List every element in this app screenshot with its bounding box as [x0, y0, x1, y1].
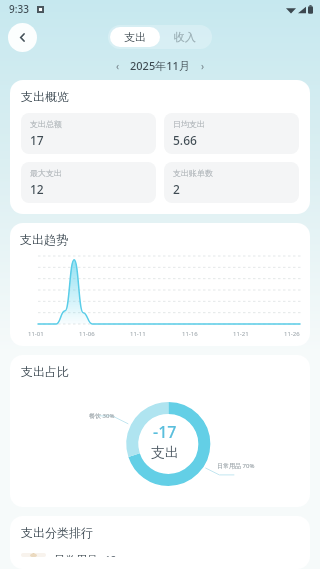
- button[interactable]: 支出总额: [21, 113, 156, 154]
- staticText: 17: [30, 132, 44, 148]
- staticText: 收入: [174, 30, 196, 44]
- button[interactable]: 日均支出: [164, 113, 299, 154]
- staticText: 9:33: [9, 2, 29, 16]
- button[interactable]: Next month: [195, 58, 210, 73]
- button[interactable]: 支出账单数: [164, 162, 299, 203]
- button[interactable]: Back: [8, 23, 37, 52]
- staticText: -17: [153, 421, 177, 443]
- staticText: 支出分类排行: [21, 525, 93, 540]
- staticText: 支出账单数: [173, 168, 213, 178]
- staticText: 最大支出: [30, 168, 62, 178]
- staticText: ›: [201, 59, 205, 73]
- button[interactable]: Previous month: [110, 58, 125, 73]
- staticText: 支出概览: [21, 89, 69, 104]
- staticText: 2025年11月: [130, 58, 190, 73]
- button[interactable]: 最大支出: [21, 162, 156, 203]
- staticText: 支出占比: [21, 364, 69, 379]
- staticText: 餐饮 30%: [89, 412, 115, 420]
- staticText: 11-16: [182, 330, 198, 338]
- staticText: 11-26: [284, 330, 300, 338]
- staticText: 5.66: [173, 132, 197, 148]
- staticText: 12: [105, 553, 117, 557]
- button[interactable]: 支出: [110, 27, 160, 47]
- staticText: 日均支出: [173, 119, 205, 129]
- staticText: ‹: [116, 59, 120, 73]
- staticText: 12: [30, 181, 44, 197]
- staticText: 11-01: [28, 330, 44, 338]
- staticText: 11-21: [233, 330, 249, 338]
- staticText: 日常用品: [54, 553, 98, 557]
- staticText: 11-06: [79, 330, 95, 338]
- staticText: 11-11: [130, 330, 146, 338]
- staticText: 支出趋势: [20, 232, 68, 247]
- staticText: 支出总额: [30, 119, 62, 129]
- button[interactable]: 日常用品: [21, 553, 299, 557]
- button[interactable]: 收入: [160, 27, 210, 47]
- staticText: 支出: [151, 444, 179, 462]
- staticText: 2: [173, 181, 180, 197]
- staticText: 支出: [124, 30, 146, 44]
- staticText: 日常用品 70%: [217, 462, 255, 470]
